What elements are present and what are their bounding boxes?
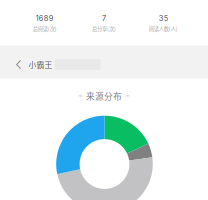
button[interactable]: 小霸王 <box>0 45 208 79</box>
staticText: 总阅读(次) <box>33 25 57 33</box>
staticText: 来源分布 <box>86 90 122 102</box>
staticText: 35 <box>159 14 168 23</box>
staticText: 7 <box>102 14 106 23</box>
staticText: 阅读人数(人) <box>149 25 178 33</box>
staticText: 总分享(次) <box>92 25 116 33</box>
staticText: 小霸王 <box>28 59 52 70</box>
staticText: 1689 <box>36 14 54 23</box>
